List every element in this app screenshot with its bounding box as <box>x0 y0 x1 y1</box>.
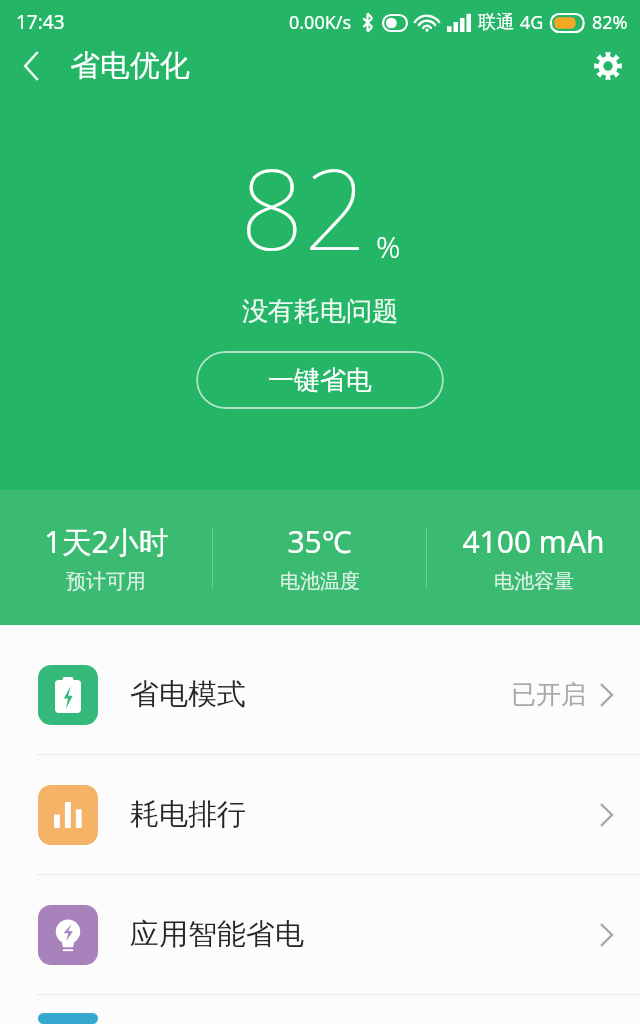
staticText: 82% <box>592 10 628 35</box>
staticText: 电池温度 <box>280 569 360 594</box>
staticText: 应用智能省电 <box>130 916 304 953</box>
staticText: % <box>376 226 401 267</box>
staticText: 预计可用 <box>66 569 146 594</box>
staticText: 一键省电 <box>268 364 372 397</box>
staticText: 0.00K/s <box>289 10 352 35</box>
staticText: 耗电排行 <box>130 796 246 833</box>
staticText: 82 <box>240 130 368 283</box>
staticText: 省电模式 <box>130 676 246 713</box>
staticText: 4100 mAh <box>462 521 605 562</box>
staticText: 省电优化 <box>70 47 190 85</box>
staticText: 4G <box>520 10 544 35</box>
button[interactable]: 省电模式 <box>0 635 640 754</box>
staticText: 联通 <box>478 11 514 34</box>
button[interactable]: 一键省电 <box>196 351 444 409</box>
button[interactable] <box>0 995 640 1024</box>
staticText: 电池容量 <box>494 569 574 594</box>
staticText: 17:43 <box>16 9 65 35</box>
button[interactable]: 应用智能省电 <box>0 875 640 994</box>
button[interactable]: 耗电排行 <box>0 755 640 874</box>
button[interactable]: Back <box>0 44 62 88</box>
staticText: 35℃ <box>287 521 352 562</box>
staticText: 1天2小时 <box>44 521 169 562</box>
button[interactable]: Settings <box>576 44 640 88</box>
staticText: 已开启 <box>511 679 586 710</box>
staticText: 没有耗电问题 <box>242 295 398 328</box>
